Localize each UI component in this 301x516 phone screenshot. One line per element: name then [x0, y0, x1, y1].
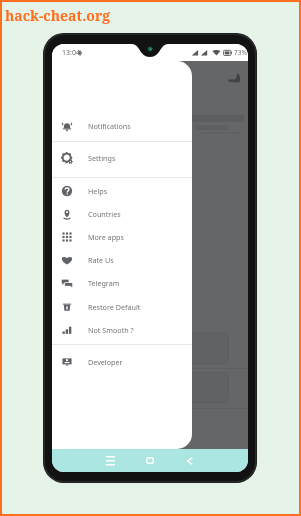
staticText: hack-cheat.org [5, 6, 111, 25]
staticText: Helps [88, 186, 108, 196]
button[interactable]: Developer [52, 350, 192, 373]
button[interactable]: Settings [52, 146, 192, 169]
staticText: Restore Default [88, 302, 141, 312]
staticText: 13:04 [62, 48, 80, 58]
staticText: Countries [88, 209, 121, 219]
button[interactable]: Telegram [52, 271, 192, 294]
button[interactable]: More apps [52, 225, 192, 248]
staticText: Not Smooth ? [88, 325, 134, 335]
button[interactable]: Helps [52, 179, 192, 202]
button[interactable]: Notifications [52, 114, 192, 137]
staticText: Rate Us [88, 255, 114, 265]
staticText: More apps [88, 232, 124, 242]
button[interactable]: Not Smooth ? [52, 318, 192, 341]
staticText: Telegram [88, 278, 120, 288]
staticText: Notifications [88, 121, 131, 131]
button[interactable]: Restore Default [52, 295, 192, 318]
button[interactable]: Rate Us [52, 248, 192, 271]
button[interactable]: Recent apps [98, 449, 122, 472]
button[interactable]: Home [138, 449, 162, 472]
staticText: Developer [88, 357, 123, 367]
staticText: 73% [234, 48, 248, 57]
staticText: Settings [88, 153, 116, 163]
button[interactable]: Back [178, 449, 202, 472]
button[interactable]: Countries [52, 202, 192, 225]
